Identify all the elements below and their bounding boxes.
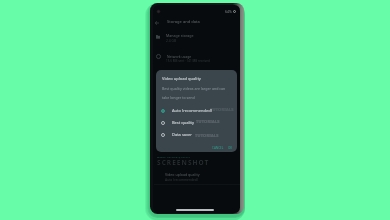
staticText: Storage and data	[167, 19, 200, 24]
staticText: 15.6 MB sent · 141 MB received	[166, 59, 210, 63]
button[interactable]: Back	[153, 17, 163, 29]
button[interactable]	[153, 28, 240, 47]
staticText: TUTORIALS	[196, 119, 220, 124]
staticText: TUTORIALS	[210, 107, 234, 112]
button[interactable]: CANCEL	[210, 145, 226, 151]
staticText: Best quality	[172, 120, 194, 125]
staticText: Auto (recommended)	[165, 177, 198, 181]
button[interactable]: Best quality	[156, 117, 237, 129]
staticText: TUTORIALS	[195, 133, 219, 138]
staticText: 64%	[225, 9, 232, 14]
button[interactable]	[153, 48, 240, 68]
button[interactable]: Data saver	[156, 129, 237, 141]
staticText: 2.4 GB	[166, 38, 177, 42]
staticText: Data saver	[172, 132, 192, 137]
staticText: MEDIA UPLOAD QUALITY	[157, 155, 191, 158]
button[interactable]: Auto (recommended)	[156, 105, 237, 117]
staticText: SCREENSHOT	[157, 158, 210, 167]
button[interactable]: OK	[226, 145, 235, 151]
staticText: Video upload quality	[165, 172, 200, 177]
staticText: Manage storage	[166, 33, 194, 38]
staticText: Auto (recommended)	[172, 108, 212, 113]
staticText: Best quality videos are larger and can t…	[162, 86, 228, 100]
staticText: Network usage	[167, 54, 192, 59]
staticText: Video upload quality	[162, 76, 201, 82]
